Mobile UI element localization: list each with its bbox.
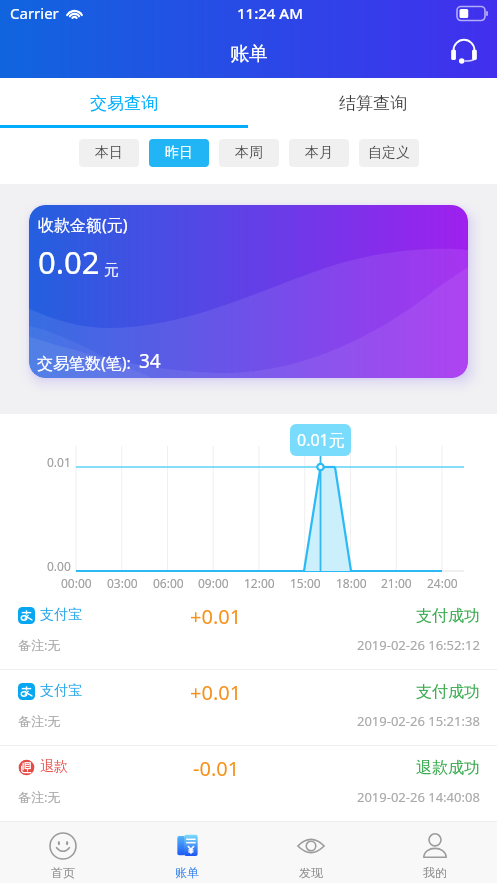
staticText: 结算查询 bbox=[339, 93, 407, 114]
staticText: 支付宝 bbox=[40, 606, 82, 624]
staticText: 交易笔数(笔): bbox=[37, 352, 131, 374]
button[interactable]: 本月 bbox=[289, 139, 349, 167]
staticText: Carrier bbox=[10, 3, 59, 23]
staticText: 本月 bbox=[305, 144, 333, 162]
button[interactable]: 发现 bbox=[249, 822, 373, 883]
staticText: 收款金额(元) bbox=[38, 214, 128, 236]
button[interactable]: 我的 bbox=[373, 822, 497, 883]
staticText: 账单 bbox=[175, 865, 199, 880]
button[interactable]: 客服 bbox=[445, 35, 483, 73]
staticText: 交易查询 bbox=[90, 93, 158, 114]
button[interactable]: 昨日 bbox=[149, 139, 209, 167]
staticText: 首页 bbox=[51, 865, 75, 880]
staticText: 09:00 bbox=[198, 575, 229, 591]
staticText: 34 bbox=[139, 348, 161, 374]
staticText: 03:00 bbox=[107, 575, 138, 591]
button[interactable]: 支付宝 bbox=[0, 594, 497, 669]
staticText: 我的 bbox=[423, 865, 447, 880]
staticText: 退款成功 bbox=[416, 758, 480, 778]
staticText: 备注:无 bbox=[18, 712, 61, 730]
button[interactable]: 结算查询 bbox=[248, 78, 497, 128]
staticText: 11:24 AM bbox=[237, 3, 303, 23]
staticText: 0.00 bbox=[47, 558, 71, 574]
staticText: 发现 bbox=[299, 865, 323, 880]
button[interactable]: 首页 bbox=[0, 822, 125, 883]
staticText: 备注:无 bbox=[18, 788, 61, 806]
button[interactable]: 退款 bbox=[0, 746, 497, 821]
staticText: 支付成功 bbox=[416, 682, 480, 702]
staticText: 自定义 bbox=[368, 144, 410, 162]
button[interactable]: 本周 bbox=[219, 139, 279, 167]
staticText: 支付宝 bbox=[40, 682, 82, 700]
staticText: +0.01 bbox=[190, 603, 242, 627]
staticText: 06:00 bbox=[153, 575, 184, 591]
button[interactable]: 自定义 bbox=[359, 139, 419, 167]
staticText: 退款 bbox=[40, 758, 68, 776]
button[interactable]: 收款金额(元) bbox=[29, 205, 468, 378]
staticText: 18:00 bbox=[336, 575, 367, 591]
button[interactable]: 交易查询 bbox=[0, 78, 248, 128]
staticText: -0.01 bbox=[193, 755, 240, 779]
staticText: 12:00 bbox=[244, 575, 275, 591]
staticText: 备注:无 bbox=[18, 636, 61, 654]
staticText: 昨日 bbox=[165, 144, 193, 162]
staticText: 0.01 bbox=[47, 454, 71, 470]
button[interactable]: 账单 bbox=[125, 822, 249, 883]
staticText: 支付成功 bbox=[416, 606, 480, 626]
staticText: 21:00 bbox=[381, 575, 412, 591]
staticText: 2019-02-26 14:40:08 bbox=[357, 788, 480, 806]
staticText: 本日 bbox=[95, 144, 123, 162]
staticText: 15:00 bbox=[290, 575, 321, 591]
staticText: +0.01 bbox=[190, 679, 242, 703]
staticText: 24:00 bbox=[427, 575, 458, 591]
staticText: 2019-02-26 15:21:38 bbox=[357, 712, 480, 730]
staticText: 元 bbox=[104, 261, 119, 280]
staticText: 本周 bbox=[235, 144, 263, 162]
staticText: 00:00 bbox=[61, 575, 92, 591]
staticText: 2019-02-26 16:52:12 bbox=[357, 636, 480, 654]
staticText: 0.02 bbox=[38, 241, 100, 283]
button[interactable]: 支付宝 bbox=[0, 670, 497, 745]
button[interactable]: 本日 bbox=[79, 139, 139, 167]
staticText: 账单 bbox=[230, 42, 268, 66]
staticText: 0.01元 bbox=[297, 429, 345, 451]
